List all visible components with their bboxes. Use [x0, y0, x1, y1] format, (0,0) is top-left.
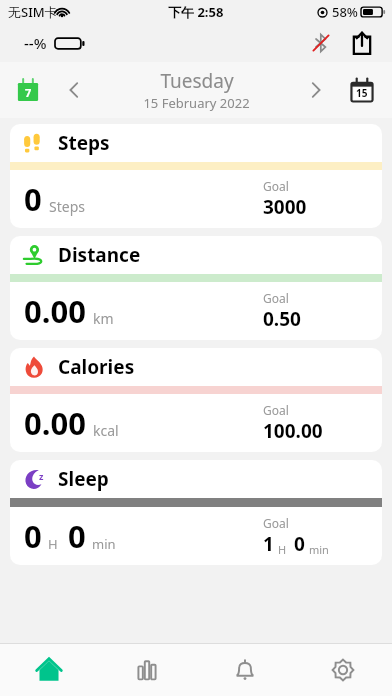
staticText: 7: [25, 85, 32, 100]
staticText: 0.50: [263, 306, 301, 332]
staticText: 0.00: [24, 402, 86, 444]
staticText: 无SIM卡: [8, 3, 58, 21]
button[interactable]: Settings: [294, 644, 392, 696]
button[interactable]: Home: [0, 644, 98, 696]
button[interactable]: Alarms: [196, 644, 294, 696]
staticText: km: [93, 309, 114, 328]
staticText: Tuesday: [160, 68, 234, 94]
button[interactable]: Statistics: [98, 644, 196, 696]
button[interactable]: Next day: [296, 70, 336, 110]
staticText: Goal: [263, 402, 289, 418]
staticText: 0: [24, 515, 42, 557]
staticText: Goal: [263, 290, 289, 306]
staticText: 1: [263, 531, 274, 557]
staticText: 下午 2:58: [168, 3, 224, 21]
button[interactable]: Bluetooth disconnected: [306, 28, 336, 58]
staticText: H: [278, 542, 287, 557]
staticText: Steps: [49, 197, 85, 216]
staticText: 15 February 2022: [143, 94, 250, 112]
button[interactable]: Pick date: [344, 72, 380, 108]
staticText: Goal: [263, 178, 289, 194]
staticText: 0.00: [24, 290, 86, 332]
button[interactable]: Today: [10, 72, 46, 108]
button[interactable]: z: [10, 460, 382, 565]
staticText: Steps: [58, 130, 110, 156]
staticText: Distance: [58, 242, 141, 268]
button[interactable]: Distance: [10, 236, 382, 340]
staticText: min: [309, 542, 329, 557]
staticText: --%: [24, 33, 47, 53]
staticText: 58%: [332, 3, 358, 21]
staticText: 0: [68, 515, 86, 557]
staticText: Goal: [263, 515, 289, 531]
button[interactable]: Share: [346, 27, 378, 59]
staticText: Sleep: [58, 466, 109, 492]
button[interactable]: Steps: [10, 124, 382, 228]
button[interactable]: Calories: [10, 348, 382, 452]
staticText: 15: [356, 86, 368, 100]
staticText: kcal: [93, 421, 119, 440]
staticText: 3000: [263, 194, 307, 220]
staticText: 0: [294, 531, 305, 557]
button[interactable]: Previous day: [54, 70, 94, 110]
staticText: z: [39, 470, 44, 482]
staticText: 100.00: [263, 418, 323, 444]
staticText: 0: [24, 178, 42, 220]
staticText: Calories: [58, 354, 135, 380]
staticText: H: [48, 535, 58, 553]
staticText: min: [92, 535, 116, 553]
